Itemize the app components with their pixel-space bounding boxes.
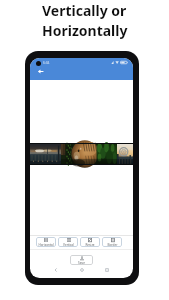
staticText: Resize [85, 243, 95, 247]
staticText: Border [107, 243, 118, 247]
button[interactable]: Back [52, 266, 60, 274]
staticText: 6:34 [43, 61, 50, 65]
button[interactable]: Vertical [58, 237, 78, 247]
staticText: Horizontally [42, 21, 128, 40]
button[interactable]: Save [70, 255, 93, 265]
button[interactable]: Home [78, 266, 86, 274]
staticText: Vertical [63, 243, 74, 247]
staticText: Save [78, 261, 85, 265]
staticText: Vertically or [42, 1, 127, 20]
button[interactable]: Recent apps [103, 266, 111, 274]
staticText: Horizontal [38, 243, 54, 247]
button[interactable]: Horizontal [36, 237, 56, 247]
button[interactable]: Navigate up [37, 69, 44, 74]
button[interactable]: Resize [80, 237, 100, 247]
button[interactable]: Border [102, 237, 122, 247]
